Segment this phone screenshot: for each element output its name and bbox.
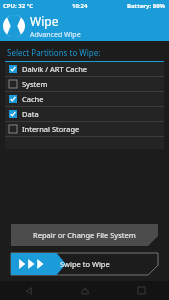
- staticText: 10:24: [72, 2, 88, 10]
- staticText: Advanced Wipe: [30, 30, 81, 40]
- staticText: Data: [22, 109, 39, 119]
- staticText: Select Partitions to Wipe:: [7, 47, 101, 58]
- staticText: CPU: 32 °C: [3, 2, 34, 10]
- button[interactable]: Cache: [5, 92, 164, 106]
- button[interactable]: Swipe to Wipe: [11, 253, 158, 275]
- staticText: Swipe to Wipe: [60, 259, 110, 269]
- button[interactable]: System: [5, 77, 164, 91]
- staticText: Repair or Change File System: [33, 230, 136, 240]
- button[interactable]: Repair or Change File System: [11, 224, 158, 246]
- button[interactable]: Back: [0, 281, 57, 300]
- button[interactable]: Wipe: [0, 11, 169, 41]
- staticText: Dalvik / ART Cache: [22, 64, 88, 74]
- button[interactable]: Dalvik / ART Cache: [5, 62, 164, 76]
- staticText: Battery: 86%: [127, 2, 166, 10]
- staticText: Wipe: [30, 13, 59, 29]
- staticText: Cache: [22, 94, 44, 104]
- other: Wipe: [3, 15, 25, 37]
- staticText: Internal Storage: [22, 124, 80, 134]
- button[interactable]: Data: [5, 107, 164, 121]
- staticText: System: [22, 79, 48, 89]
- button[interactable]: Recents: [113, 281, 169, 300]
- button[interactable]: Home: [57, 281, 113, 300]
- button[interactable]: Internal Storage: [5, 122, 164, 136]
